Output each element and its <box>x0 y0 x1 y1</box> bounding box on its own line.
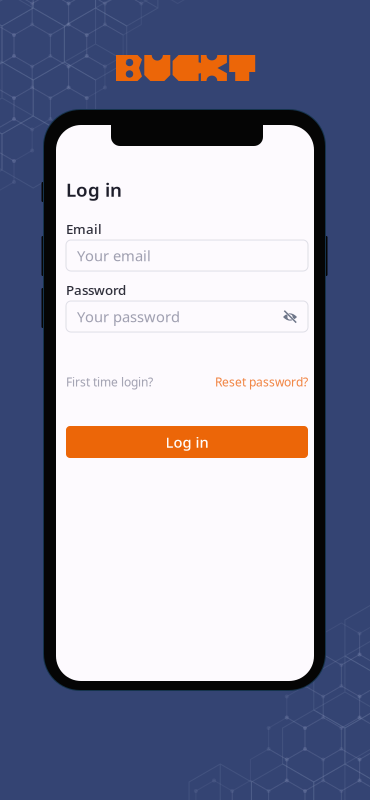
staticText: Reset password? <box>215 374 308 390</box>
staticText: Your email <box>77 246 151 265</box>
staticText: Password <box>66 281 126 299</box>
button[interactable]: Log in <box>66 426 308 458</box>
button[interactable]: First time login? <box>66 374 153 390</box>
staticText: Email <box>66 220 102 238</box>
button[interactable]: Your email <box>66 240 308 271</box>
staticText: First time login? <box>66 374 153 390</box>
staticText: Log in <box>165 432 208 452</box>
staticText: Your password <box>77 307 180 326</box>
staticText: Log in <box>66 177 122 202</box>
button[interactable]: Your password <box>66 301 308 332</box>
button[interactable]: Reset password? <box>215 374 308 390</box>
